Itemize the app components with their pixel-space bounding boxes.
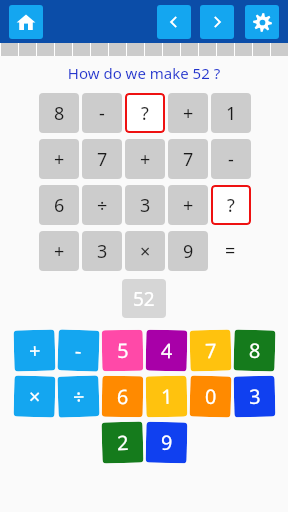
button[interactable]: ÷ xyxy=(82,185,122,225)
button[interactable]: 9 xyxy=(145,421,187,463)
button[interactable]: - xyxy=(82,93,122,133)
staticText: ? xyxy=(227,193,235,218)
button[interactable]: 7 xyxy=(189,329,231,371)
button[interactable]: 1 xyxy=(211,93,251,133)
staticText: 3 xyxy=(97,239,108,264)
button[interactable]: 9 xyxy=(168,231,208,271)
button[interactable]: 3 xyxy=(82,231,122,271)
staticText: = xyxy=(225,238,236,263)
staticText: + xyxy=(29,337,41,364)
staticText: 4 xyxy=(161,337,173,364)
button[interactable]: + xyxy=(168,93,208,133)
staticText: 1 xyxy=(226,101,237,126)
button[interactable]: ? xyxy=(211,185,251,225)
staticText: - xyxy=(99,101,105,126)
button[interactable]: 6 xyxy=(39,185,79,225)
button[interactable]: ÷ xyxy=(57,375,100,418)
staticText: 9 xyxy=(183,239,194,264)
button[interactable]: × xyxy=(125,231,165,271)
staticText: + xyxy=(54,239,65,264)
button[interactable]: 7 xyxy=(82,139,122,179)
button[interactable]: 3 xyxy=(125,185,165,225)
staticText: × xyxy=(29,383,41,410)
staticText: - xyxy=(75,337,82,364)
button[interactable]: ? xyxy=(125,93,165,133)
button[interactable]: × xyxy=(13,375,55,417)
button[interactable]: - xyxy=(211,139,251,179)
button[interactable]: + xyxy=(13,329,56,372)
staticText: 7 xyxy=(205,337,217,364)
button[interactable]: 1 xyxy=(146,376,187,417)
button[interactable]: 2 xyxy=(101,421,143,463)
button[interactable]: 7 xyxy=(168,139,208,179)
button[interactable]: 8 xyxy=(39,93,79,133)
staticText: 2 xyxy=(117,429,129,456)
button[interactable]: Next xyxy=(200,5,234,39)
button[interactable]: 6 xyxy=(102,376,143,417)
staticText: - xyxy=(228,147,234,172)
staticText: + xyxy=(140,147,151,172)
staticText: 1 xyxy=(161,383,173,410)
staticText: + xyxy=(183,101,194,126)
staticText: + xyxy=(183,193,194,218)
staticText: 5 xyxy=(117,337,129,364)
staticText: ÷ xyxy=(97,193,108,218)
staticText: 9 xyxy=(161,429,173,456)
staticText: 6 xyxy=(54,193,65,218)
button[interactable]: + xyxy=(39,231,79,271)
staticText: How do we make 52 ? xyxy=(0,63,288,83)
button[interactable]: 4 xyxy=(146,330,187,371)
button[interactable]: Previous xyxy=(157,5,191,39)
button[interactable]: - xyxy=(57,329,100,372)
button[interactable]: Settings xyxy=(245,5,279,39)
staticText: 52 xyxy=(133,286,155,312)
staticText: ? xyxy=(141,101,149,126)
staticText: + xyxy=(54,147,65,172)
button[interactable]: 0 xyxy=(189,375,232,418)
button[interactable]: + xyxy=(39,139,79,179)
staticText: 7 xyxy=(97,147,108,172)
button[interactable]: 3 xyxy=(233,375,275,417)
staticText: 8 xyxy=(54,101,65,126)
button[interactable]: + xyxy=(125,139,165,179)
staticText: 3 xyxy=(140,193,151,218)
staticText: × xyxy=(140,239,151,264)
button[interactable]: 8 xyxy=(233,329,275,371)
button[interactable]: 52 xyxy=(122,279,166,318)
staticText: 7 xyxy=(183,147,194,172)
staticText: ÷ xyxy=(73,383,85,410)
staticText: 0 xyxy=(205,383,217,410)
staticText: 3 xyxy=(249,383,261,410)
button[interactable]: Home xyxy=(9,5,43,39)
button[interactable]: + xyxy=(168,185,208,225)
staticText: 6 xyxy=(117,383,129,410)
button[interactable]: 5 xyxy=(102,330,143,371)
staticText: 8 xyxy=(249,337,261,364)
